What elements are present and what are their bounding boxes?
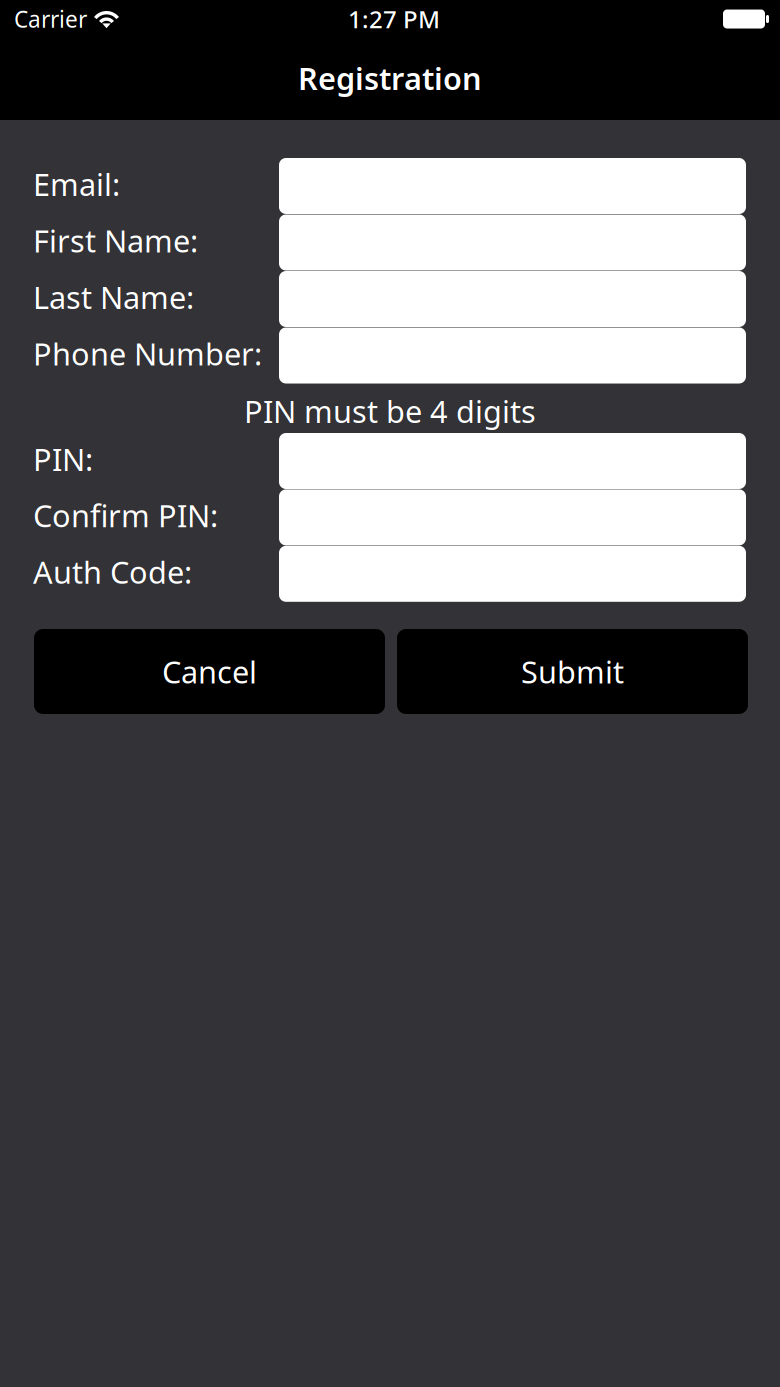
button[interactable]: Submit — [397, 629, 748, 714]
button[interactable]: Auth Code: — [33, 546, 746, 602]
staticText: Last Name: — [33, 277, 194, 317]
staticText: Carrier — [14, 4, 87, 34]
staticText: Submit — [521, 651, 624, 692]
staticText: Auth Code: — [33, 551, 192, 592]
staticText: PIN: — [33, 439, 93, 479]
staticText: First Name: — [33, 220, 198, 261]
staticText: Registration — [298, 58, 482, 98]
staticText: Cancel — [162, 651, 257, 692]
button[interactable]: Phone Number: — [33, 327, 746, 383]
staticText: Phone Number: — [33, 333, 262, 374]
button[interactable]: Confirm PIN: — [33, 489, 746, 545]
staticText: Email: — [33, 164, 120, 204]
button[interactable]: Cancel — [34, 629, 385, 714]
staticText: Confirm PIN: — [33, 495, 218, 536]
button[interactable]: First Name: — [33, 214, 746, 270]
button[interactable]: PIN: — [33, 433, 746, 489]
button[interactable]: Email: — [33, 158, 746, 214]
staticText: 1:27 PM — [348, 3, 440, 35]
staticText: PIN must be 4 digits — [244, 391, 536, 431]
button[interactable]: Last Name: — [33, 271, 746, 327]
